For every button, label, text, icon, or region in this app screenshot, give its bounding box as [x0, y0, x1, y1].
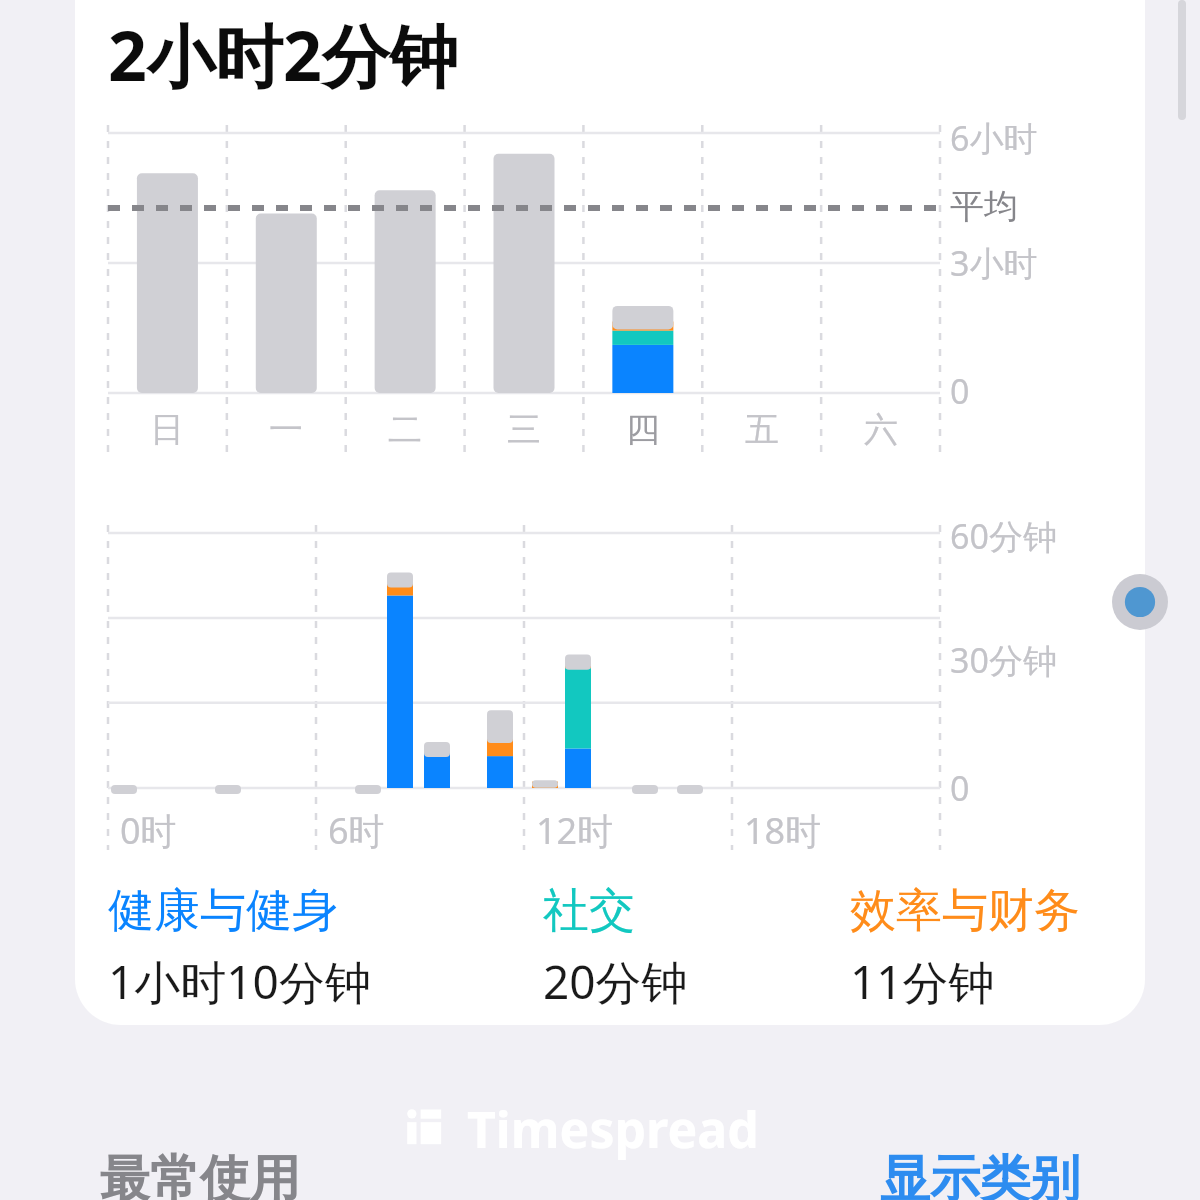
staticText: 五 [745, 408, 779, 451]
staticText: 12时 [536, 806, 614, 855]
staticText: 6时 [328, 806, 385, 855]
staticText: 60分钟 [950, 513, 1057, 559]
staticText: 社交 [543, 882, 635, 940]
staticText: 三 [507, 408, 541, 451]
button[interactable]: 最常使用 [100, 1148, 300, 1200]
staticText: 平均 [950, 185, 1018, 228]
button[interactable]: Scrub handle [1112, 574, 1168, 630]
staticText: 六 [864, 408, 898, 451]
staticText: 18时 [744, 806, 822, 855]
staticText: 一 [269, 408, 303, 451]
staticText: 30分钟 [950, 637, 1057, 683]
button[interactable]: 健康与健身 [108, 882, 371, 1013]
staticText: 20分钟 [543, 950, 688, 1013]
staticText: 0 [950, 765, 970, 811]
staticText: 3小时 [950, 240, 1038, 286]
staticText: 健康与健身 [108, 882, 338, 940]
staticText: 2小时2分钟 [108, 8, 458, 101]
staticText: 二 [388, 408, 422, 451]
staticText: 最常使用 [100, 1148, 300, 1200]
button[interactable]: 显示类别 [880, 1148, 1080, 1200]
button[interactable]: 社交 [543, 882, 688, 1013]
staticText: 效率与财务 [850, 882, 1080, 940]
staticText: 6小时 [950, 115, 1038, 161]
staticText: 0 [950, 368, 970, 414]
button[interactable]: 效率与财务 [850, 882, 1080, 1013]
staticText: 四 [626, 408, 660, 451]
staticText: 1小时10分钟 [108, 950, 371, 1013]
staticText: 11分钟 [850, 950, 995, 1013]
staticText: 0时 [120, 806, 177, 855]
staticText: 显示类别 [880, 1148, 1080, 1200]
staticText: Timespread [467, 1095, 759, 1163]
staticText: 日 [150, 408, 184, 451]
